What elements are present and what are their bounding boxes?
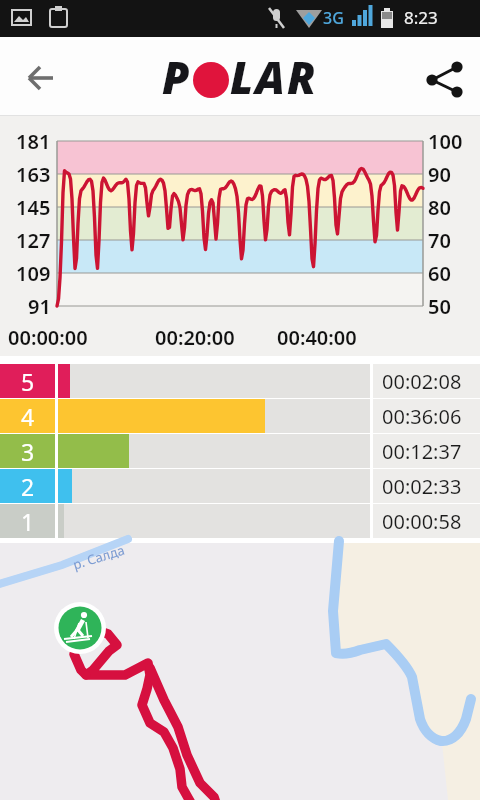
staticText: 3G [323, 7, 344, 29]
staticText: 8:23 [404, 6, 438, 29]
staticText: 3 [21, 436, 35, 467]
button[interactable] [416, 49, 472, 105]
staticText: 70 [428, 227, 451, 254]
button[interactable]: 5 [0, 364, 480, 398]
button[interactable]: 4 [0, 399, 480, 433]
staticText: 163 [16, 161, 51, 188]
staticText: 2 [21, 471, 35, 502]
staticText: 50 [428, 293, 451, 320]
staticText: 00:00:58 [382, 508, 462, 535]
staticText: 00:20:00 [155, 324, 235, 351]
staticText: р. Салда [70, 540, 127, 573]
staticText: 60 [428, 260, 451, 287]
staticText: 00:40:00 [277, 324, 357, 351]
staticText: 91 [28, 293, 51, 320]
staticText: LAR [230, 47, 318, 107]
staticText: 145 [16, 194, 51, 221]
staticText: 00:02:33 [382, 473, 462, 500]
button[interactable] [13, 50, 69, 106]
staticText: 00:36:06 [382, 403, 462, 430]
staticText: 00:12:37 [382, 438, 462, 465]
staticText: 127 [16, 227, 51, 254]
staticText: 90 [428, 161, 451, 188]
button[interactable]: 1 [0, 504, 480, 538]
button[interactable]: 3 [0, 434, 480, 468]
staticText: 4 [21, 401, 35, 432]
staticText: P [162, 47, 192, 107]
staticText: 00:00:00 [8, 324, 88, 351]
staticText: 1 [21, 506, 35, 537]
staticText: 80 [428, 194, 451, 221]
button[interactable]: 2 [0, 469, 480, 503]
staticText: 100 [428, 128, 463, 155]
staticText: 109 [16, 260, 51, 287]
staticText: 00:02:08 [382, 368, 462, 395]
staticText: 5 [21, 366, 35, 397]
staticText: 181 [16, 128, 51, 155]
